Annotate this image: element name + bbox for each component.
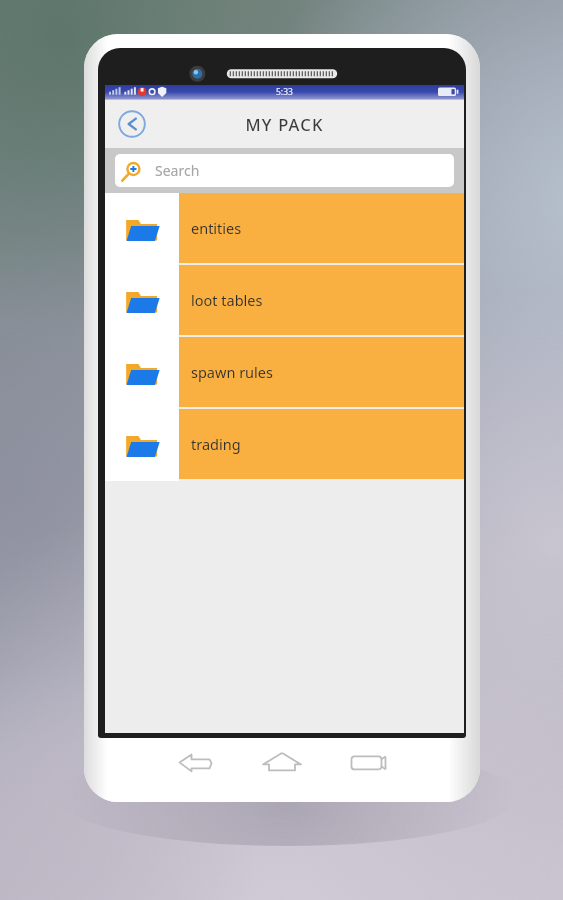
button[interactable]: Back [113,105,151,143]
button[interactable]: trading [105,409,464,481]
button[interactable]: loot tables [105,265,464,337]
staticText: trading [191,434,241,454]
staticText: loot tables [191,290,263,310]
button[interactable]: entities [105,193,464,265]
button[interactable]: spawn rules [105,337,464,409]
staticText: 5:33 [276,86,293,98]
staticText: entities [191,218,242,238]
staticText: MY PACK [245,113,324,135]
staticText: Search [155,161,200,180]
staticText: spawn rules [191,362,273,382]
button[interactable]: Search [115,154,454,187]
